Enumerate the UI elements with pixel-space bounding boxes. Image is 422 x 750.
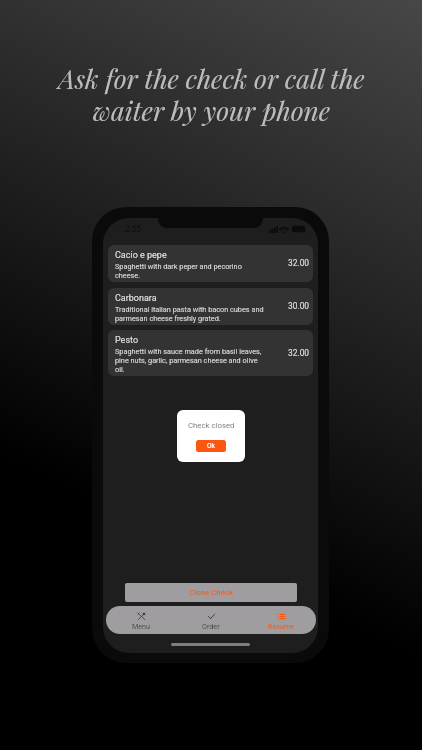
button[interactable]: Close Check bbox=[125, 583, 297, 602]
button[interactable]: Order bbox=[176, 610, 246, 630]
staticText: Spaghetti with sauce made from basil lea… bbox=[115, 347, 262, 374]
button[interactable]: Carbonara bbox=[108, 288, 313, 325]
staticText: Check closed bbox=[188, 421, 235, 430]
staticText: Menu bbox=[132, 622, 151, 630]
button[interactable]: Cacio e pepe bbox=[108, 245, 313, 282]
staticText: Ask for the check or call the waiter by … bbox=[58, 60, 365, 128]
staticText: Traditional italian pasta with bacon cub… bbox=[115, 305, 264, 323]
button[interactable]: Resume bbox=[246, 610, 316, 630]
button[interactable]: Pesto bbox=[108, 330, 313, 376]
staticText: Pesto bbox=[115, 335, 139, 346]
staticText: 32.00 bbox=[288, 258, 310, 268]
staticText: Resume bbox=[268, 622, 295, 630]
staticText: 2:55 bbox=[125, 224, 142, 234]
staticText: Close Check bbox=[189, 588, 234, 597]
button[interactable]: Ok bbox=[196, 440, 226, 452]
staticText: Cacio e pepe bbox=[115, 250, 167, 261]
staticText: 32.00 bbox=[288, 348, 310, 358]
staticText: Order bbox=[202, 622, 220, 630]
button[interactable]: Menu bbox=[106, 610, 176, 630]
staticText: 30.00 bbox=[288, 301, 310, 311]
staticText: Carbonara bbox=[115, 293, 157, 304]
staticText: Ok bbox=[207, 442, 215, 450]
staticText: Spaghetti with dark peper and pecorino c… bbox=[115, 262, 242, 280]
